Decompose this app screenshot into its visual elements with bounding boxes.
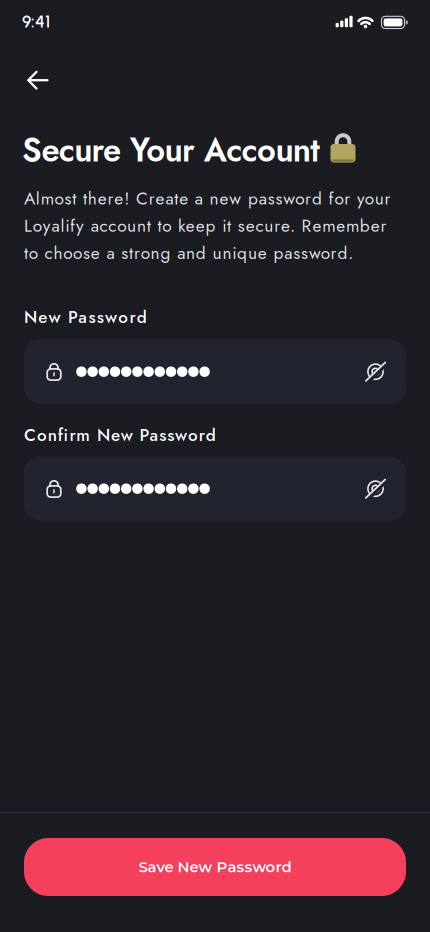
staticText: New Password — [24, 305, 147, 329]
staticText: Secure Your Account — [22, 127, 320, 174]
staticText: Confirm New Password — [24, 423, 216, 447]
button[interactable]: Show password — [355, 469, 395, 509]
button[interactable]: Back — [15, 58, 59, 102]
staticText: Save New Password — [138, 858, 291, 876]
staticText: 9:41 — [22, 11, 50, 32]
button[interactable]: Save New Password — [24, 838, 406, 896]
button[interactable]: Show password — [355, 352, 395, 392]
staticText: Almost there! Create a new password for … — [24, 186, 390, 265]
